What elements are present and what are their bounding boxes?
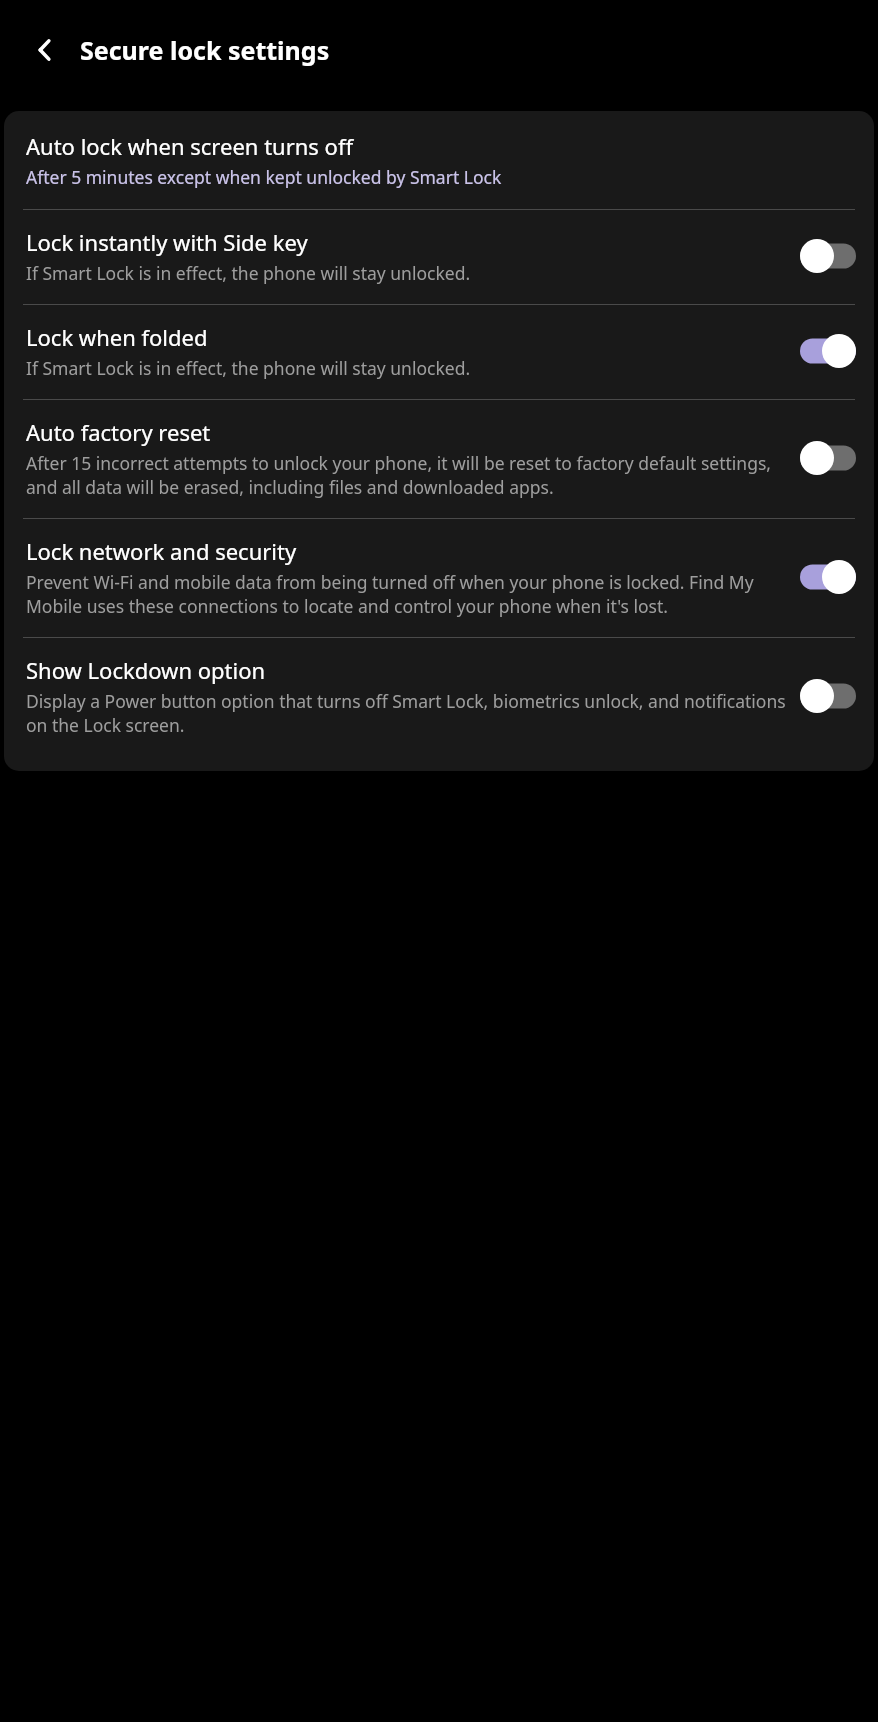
staticText: After 15 incorrect attempts to unlock yo… [26,451,788,499]
staticText: Display a Power button option that turns… [26,689,788,737]
button[interactable]: Off [800,679,856,713]
button[interactable]: Back [22,27,68,73]
button[interactable]: Auto factory reset [4,400,874,518]
button[interactable]: On [800,334,856,368]
button[interactable]: Lock instantly with Side key [4,210,874,304]
button[interactable]: Lock network and security [4,519,874,637]
staticText: Show Lockdown option [26,655,266,685]
staticText: Auto factory reset [26,417,211,447]
button[interactable]: Off [800,239,856,273]
staticText: Prevent Wi-Fi and mobile data from being… [26,570,788,618]
button[interactable]: On [800,560,856,594]
staticText: Auto lock when screen turns off [26,131,354,161]
button[interactable]: Lock when folded [4,305,874,399]
staticText: Lock instantly with Side key [26,227,308,257]
staticText: If Smart Lock is in effect, the phone wi… [26,356,471,380]
button[interactable]: Auto lock when screen turns off [4,111,874,209]
button[interactable]: Show Lockdown option [4,638,874,771]
staticText: After 5 minutes except when kept unlocke… [26,165,502,189]
staticText: Lock when folded [26,322,208,352]
button[interactable]: Off [800,441,856,475]
staticText: Lock network and security [26,536,297,566]
staticText: Secure lock settings [80,33,330,67]
staticText: If Smart Lock is in effect, the phone wi… [26,261,471,285]
